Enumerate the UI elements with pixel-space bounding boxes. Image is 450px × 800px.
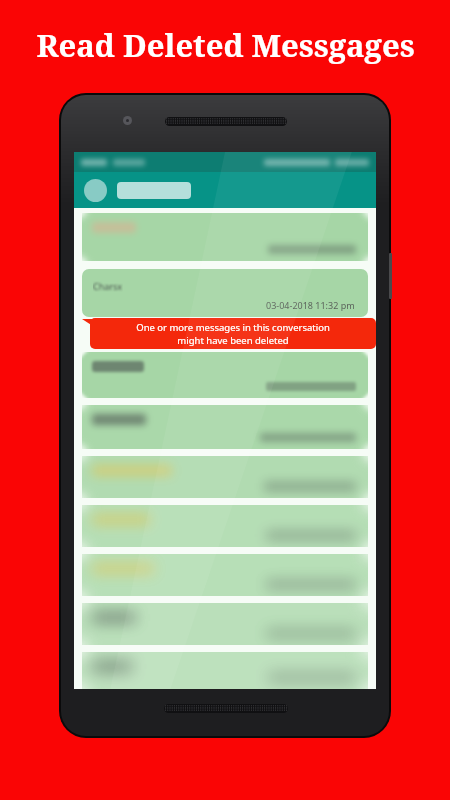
other: Contact avatar bbox=[84, 179, 107, 202]
button[interactable] bbox=[82, 456, 368, 498]
button[interactable]: Contact avatar bbox=[74, 172, 376, 208]
staticText: One or more messages in this conversatio… bbox=[136, 321, 330, 347]
staticText: Read Deleted Messgages bbox=[36, 24, 415, 66]
button[interactable] bbox=[82, 554, 368, 596]
button[interactable]: Charsx bbox=[82, 269, 368, 317]
button[interactable]: One or more messages in this conversatio… bbox=[90, 318, 376, 349]
staticText: 03-04-2018 11:32 pm bbox=[266, 299, 355, 311]
button[interactable] bbox=[82, 505, 368, 547]
button[interactable] bbox=[82, 603, 368, 645]
staticText: Charsx bbox=[93, 280, 123, 292]
button[interactable] bbox=[82, 652, 368, 689]
button[interactable] bbox=[82, 352, 368, 398]
button[interactable] bbox=[82, 405, 368, 449]
button[interactable] bbox=[82, 213, 368, 261]
